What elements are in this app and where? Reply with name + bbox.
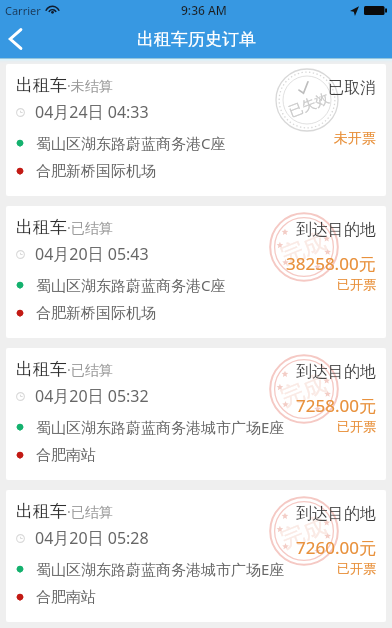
staticText: 到达目的地 [296,220,376,240]
staticText: 已失效 [286,90,332,122]
staticText: 完成 [277,227,330,271]
staticText: 7260.00元 [296,536,376,559]
staticText: 出租车 [16,359,67,380]
staticText: ·已结算 [67,360,113,379]
staticText: 完成 [277,511,330,555]
staticText: 未开票 [334,130,376,148]
staticText: 已取消 [328,78,376,98]
staticText: 04月24日 04:33 [35,101,149,123]
staticText: 合肥新桥国际机场 [36,162,156,181]
staticText: 出租车 [16,501,67,522]
staticText: 04月20日 05:43 [35,243,149,265]
staticText: 出租车历史订单 [137,29,256,50]
staticText: 蜀山区湖东路蔚蓝商务港城市广场E座 [36,559,285,579]
button[interactable]: 返回 [0,20,40,58]
staticText: 合肥新桥国际机场 [36,304,156,323]
staticText: 已开票 [337,418,376,434]
staticText: 04月20日 05:28 [35,527,149,549]
staticText: 已开票 [337,276,376,292]
staticText: ·未结算 [67,76,113,95]
button[interactable]: 完成 [6,490,386,622]
staticText: 7258.00元 [296,394,376,417]
staticText: 出租车 [16,75,67,96]
staticText: 合肥南站 [36,588,96,607]
staticText: 完成 [277,369,330,413]
button[interactable]: 已失效 [6,64,386,196]
staticText: Carrier [5,3,41,18]
staticText: ·已结算 [67,218,113,237]
staticText: 出租车 [16,217,67,238]
staticText: 到达目的地 [296,362,376,382]
staticText: 38258.00元 [286,252,376,275]
staticText: 蜀山区湖东路蔚蓝商务港C座 [36,133,226,153]
staticText: 到达目的地 [296,504,376,524]
staticText: 04月20日 05:32 [35,385,149,407]
button[interactable]: 完成 [6,206,386,338]
button[interactable]: 完成 [6,348,386,480]
staticText: 9:36 AM [181,2,227,18]
staticText: 已开票 [337,560,376,576]
staticText: 合肥南站 [36,446,96,465]
staticText: 蜀山区湖东路蔚蓝商务港城市广场E座 [36,417,285,437]
staticText: ·已结算 [67,502,113,521]
staticText: 蜀山区湖东路蔚蓝商务港C座 [36,275,226,295]
